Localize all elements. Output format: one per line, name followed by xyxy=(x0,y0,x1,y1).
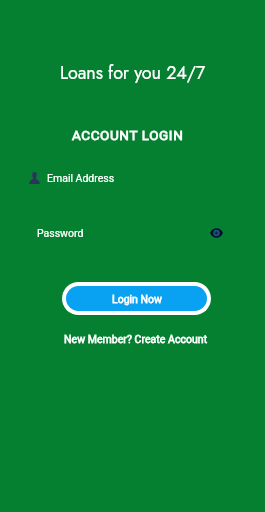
button[interactable]: Login Now xyxy=(66,286,207,311)
button[interactable]: New Member? Create Account xyxy=(64,333,208,345)
button[interactable]: Show password xyxy=(208,225,224,241)
staticText: New Member? Create Account xyxy=(64,333,208,345)
button[interactable]: Password xyxy=(37,225,208,241)
staticText: ACCOUNT LOGIN xyxy=(72,127,184,143)
staticText: Email Address xyxy=(47,172,115,184)
staticText: Loans for you 24/7 xyxy=(60,60,206,86)
button[interactable]: Email Address xyxy=(29,170,265,186)
staticText: Password xyxy=(37,227,84,239)
staticText: Login Now xyxy=(112,293,162,305)
